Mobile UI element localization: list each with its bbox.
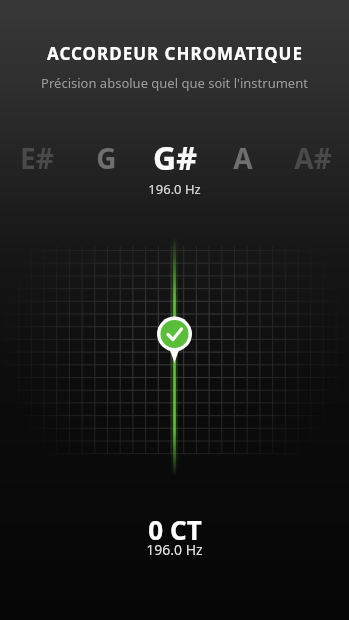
staticText: E# [20,139,54,177]
button[interactable]: G [66,135,146,181]
staticText: 0 CT [148,512,202,547]
staticText: ACCORDEUR CHROMATIQUE [47,42,303,65]
staticText: 196.0 Hz [146,540,203,559]
button[interactable]: G# [135,135,215,181]
staticText: Précision absolue quel que soit l'instru… [41,74,308,92]
staticText: G# [153,136,197,180]
button[interactable]: E# [0,135,77,181]
staticText: 196.0 Hz [148,180,201,198]
staticText: A [233,139,253,177]
staticText: A# [294,139,332,177]
staticText: G [96,139,117,177]
button[interactable]: A [203,135,283,181]
button[interactable]: A# [273,135,349,181]
